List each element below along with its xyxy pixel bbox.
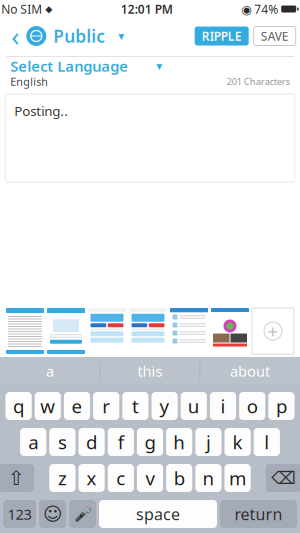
button[interactable]: f [108, 428, 134, 456]
button[interactable]: a [20, 428, 46, 456]
button[interactable]: Attached screenshot [6, 308, 44, 354]
staticText: f [118, 430, 124, 454]
staticText: ⇧ [8, 467, 25, 489]
staticText: No SIM [1, 1, 42, 17]
staticText: r [102, 394, 110, 418]
staticText: Public [53, 24, 105, 47]
button[interactable]: l [254, 428, 280, 456]
button[interactable]: Attached screenshot [88, 308, 126, 354]
staticText: 12:01 PM [121, 1, 173, 17]
button[interactable]: b [166, 464, 192, 492]
staticText: about [230, 361, 270, 381]
button[interactable]: o [239, 392, 265, 420]
button[interactable]: SAVE [254, 26, 296, 45]
staticText: q [13, 394, 24, 418]
staticText: a [28, 430, 38, 454]
staticText: h [173, 430, 185, 454]
button[interactable]: x [78, 464, 105, 492]
staticText: s [58, 430, 67, 454]
staticText: p [276, 394, 287, 418]
button[interactable]: Dictation [69, 500, 96, 528]
button[interactable]: Shift [0, 464, 34, 492]
button[interactable]: j [195, 428, 221, 456]
staticText: m [229, 466, 246, 490]
button[interactable]: Delete [266, 464, 300, 492]
button[interactable]: RIPPLE [195, 26, 249, 45]
button[interactable]: about [200, 357, 299, 385]
button[interactable]: n [195, 464, 221, 492]
button[interactable]: Attached screenshot [211, 308, 249, 354]
staticText: t [132, 394, 139, 418]
button[interactable]: Attached screenshot [170, 308, 208, 354]
button[interactable]: e [64, 392, 90, 420]
button[interactable]: g [137, 428, 163, 456]
button[interactable]: d [78, 428, 105, 456]
button[interactable]: s [49, 428, 75, 456]
button[interactable]: Emoji [39, 500, 66, 528]
staticText: ▾ [118, 29, 124, 43]
button[interactable]: Select Language [0, 57, 300, 75]
staticText: return [234, 503, 282, 525]
staticText: z [58, 466, 67, 490]
button[interactable]: space [99, 500, 217, 528]
button[interactable]: i [210, 392, 236, 420]
button[interactable]: u [181, 392, 207, 420]
staticText: ▾ [156, 59, 162, 73]
button[interactable]: m [224, 464, 251, 492]
staticText: ⌫ [271, 468, 296, 488]
staticText: j [206, 430, 211, 454]
staticText: ◉ 74% [241, 1, 278, 17]
button[interactable]: this [100, 357, 199, 385]
staticText: v [145, 466, 154, 490]
staticText: 123 [7, 504, 31, 524]
button[interactable]: Public [26, 24, 124, 47]
button[interactable]: p [268, 392, 294, 420]
button[interactable]: h [166, 428, 192, 456]
staticText: b [174, 466, 185, 490]
staticText: Posting.. [14, 102, 68, 120]
staticText: n [202, 466, 214, 490]
button[interactable]: Numbers [3, 500, 36, 528]
staticText: ☺ [43, 503, 62, 525]
button[interactable]: w [35, 392, 61, 420]
staticText: ◆ [42, 4, 52, 14]
staticText: x [87, 466, 97, 490]
staticText: e [71, 394, 82, 418]
staticText: English [10, 74, 48, 89]
staticText: k [233, 430, 243, 454]
staticText: d [86, 430, 97, 454]
button[interactable]: Attached screenshot [47, 308, 85, 354]
staticText: RIPPLE [202, 28, 242, 44]
button[interactable]: t [122, 392, 148, 420]
staticText: u [188, 394, 200, 418]
staticText: space [136, 503, 180, 525]
button[interactable]: Add photo [252, 308, 294, 354]
button[interactable]: z [49, 464, 75, 492]
staticText: o [247, 394, 258, 418]
button[interactable]: y [151, 392, 178, 420]
staticText: ‹ [11, 18, 19, 54]
button[interactable]: Attached screenshot [129, 308, 167, 354]
staticText: w [40, 394, 55, 418]
button[interactable]: k [224, 428, 251, 456]
staticText: y [160, 394, 170, 418]
button[interactable]: return [220, 500, 297, 528]
staticText: 🎤 [73, 506, 91, 522]
button[interactable]: r [93, 392, 119, 420]
staticText: g [144, 430, 155, 454]
staticText: i [220, 394, 225, 418]
staticText: this [137, 361, 162, 381]
staticText: Select Language [10, 56, 128, 76]
button[interactable]: v [137, 464, 163, 492]
button[interactable]: q [5, 392, 32, 420]
staticText: a [46, 361, 54, 381]
staticText: c [116, 466, 125, 490]
staticText: + [267, 319, 278, 343]
button[interactable]: c [108, 464, 134, 492]
button[interactable]: Back [4, 19, 26, 53]
staticText: 201 Characters [227, 75, 290, 88]
staticText: l [264, 430, 269, 454]
button[interactable]: a [0, 357, 99, 385]
staticText: SAVE [261, 28, 289, 44]
